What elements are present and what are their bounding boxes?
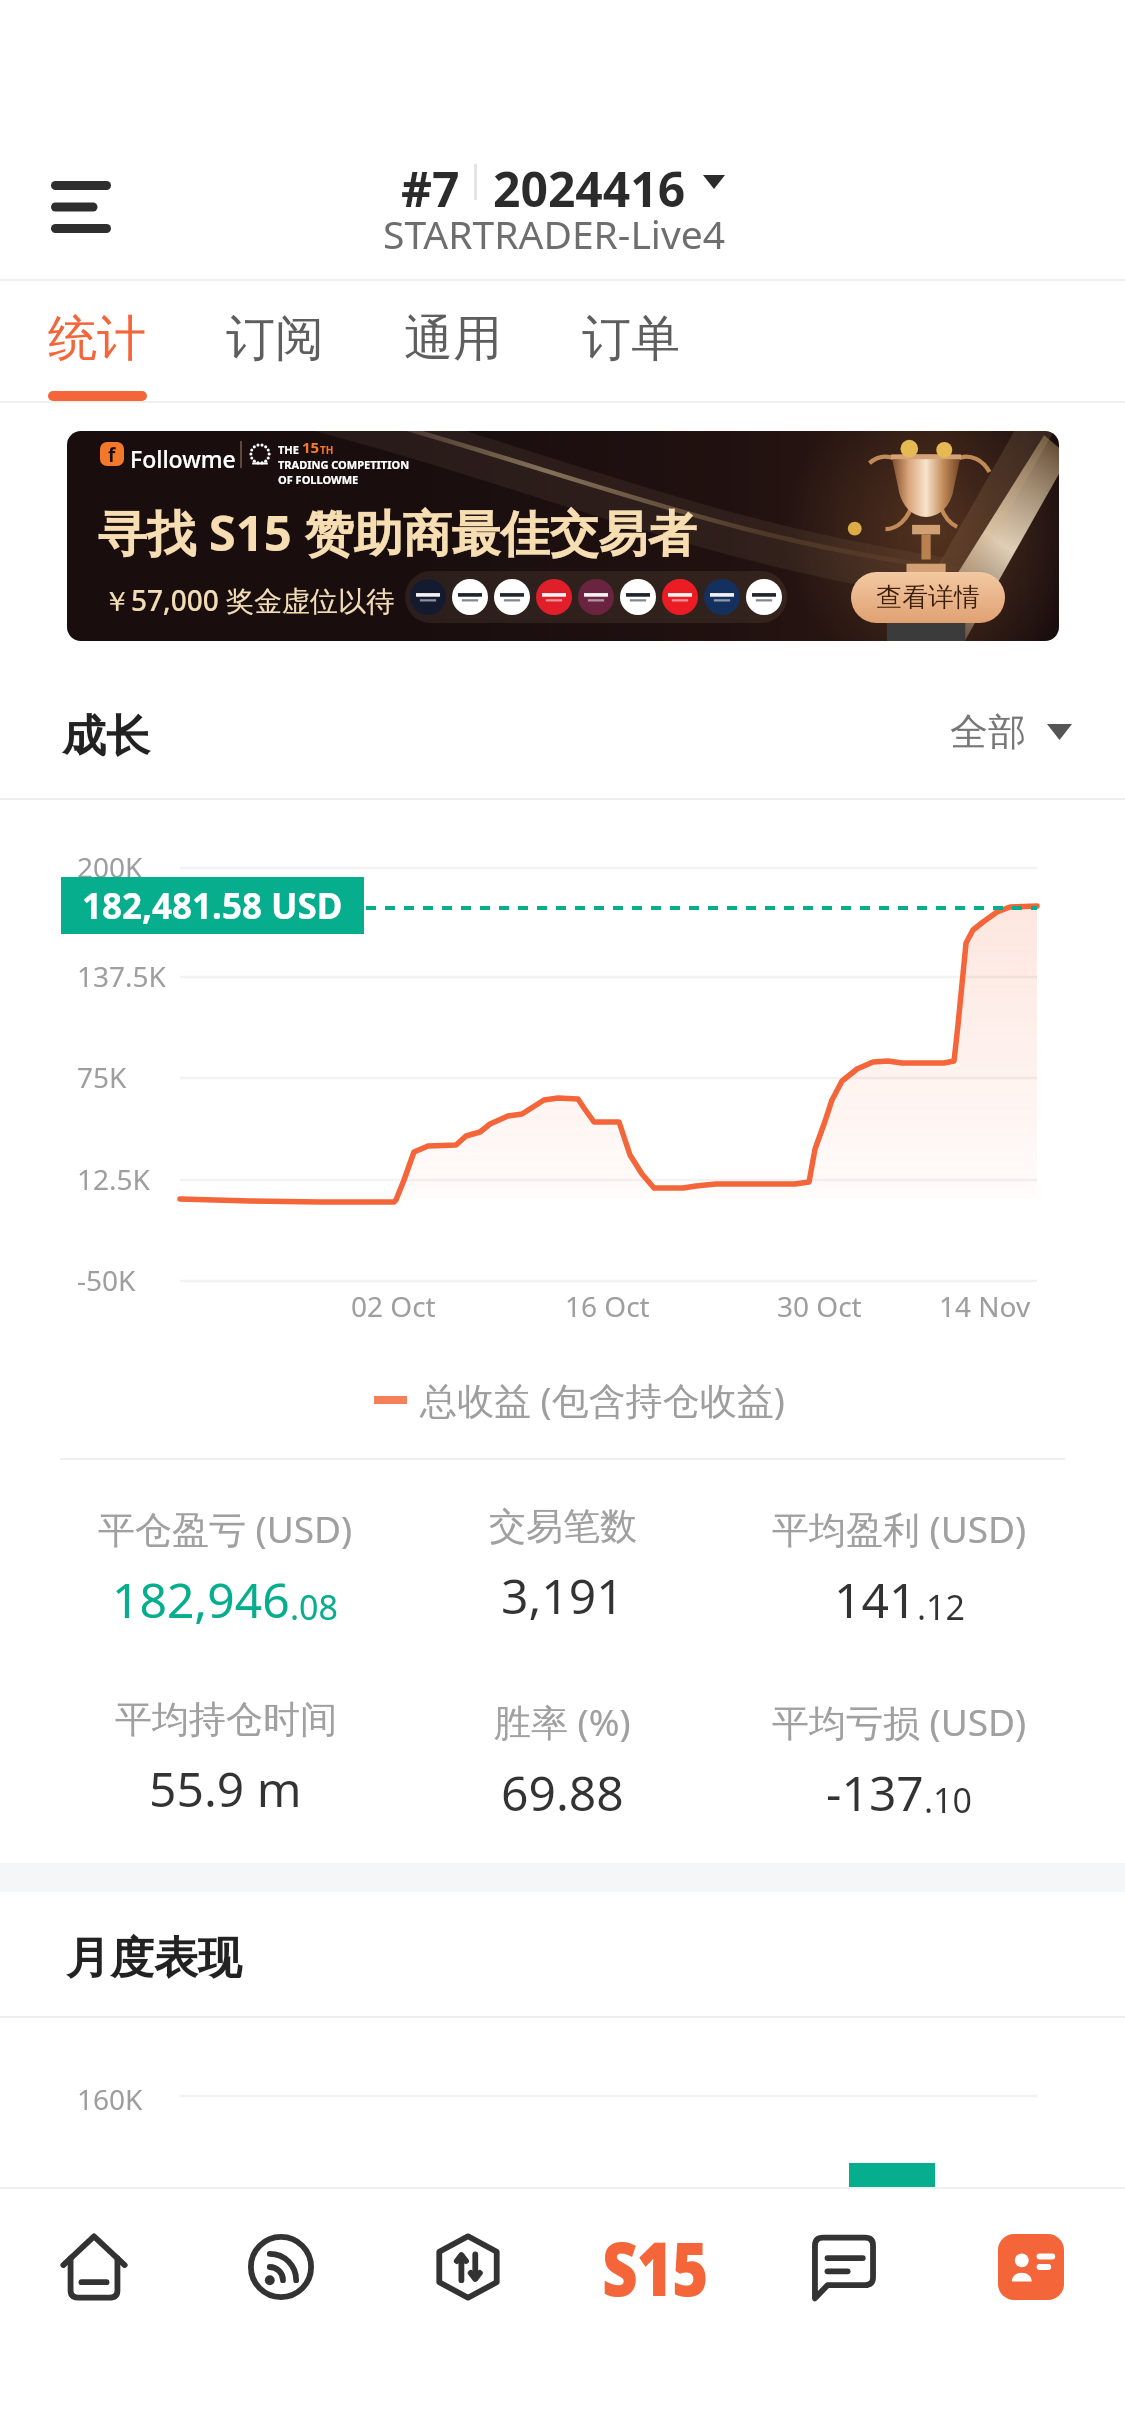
button[interactable]: Open navigation menu [19,149,142,265]
button[interactable]: Feed [187,2187,374,2347]
staticText: 订阅 [226,308,324,370]
staticText: -137 [826,1760,924,1825]
button[interactable]: S15 competition [561,2187,749,2347]
staticText: 182,481.58 USD [82,882,343,930]
staticText: 统计 [48,308,146,370]
staticText: 平均持仓时间 [115,1696,337,1743]
staticText: 55.9 m [149,1756,302,1821]
staticText: OF FOLLOWME [278,472,359,487]
staticText: 141 [834,1567,917,1632]
button[interactable]: Profile [937,2187,1125,2347]
staticText: 182,946 [112,1567,290,1632]
button[interactable]: 统计 [14,281,180,403]
staticText: ￥57,000 奖金虚位以待 [103,581,395,619]
staticText: 15 [302,437,320,457]
staticText: 总收益 (包含持仓收益) [420,1374,785,1425]
staticText: 137.5K [77,957,166,995]
staticText: .10 [924,1777,973,1823]
button[interactable]: 查看详情 [851,572,1005,623]
button[interactable]: 订单 [548,281,714,403]
staticText: -50K [77,1261,136,1299]
button[interactable]: Trades [374,2187,561,2347]
button[interactable]: 全部 [950,708,1072,756]
staticText: .12 [917,1584,966,1630]
staticText: 16 Oct [565,1287,650,1325]
staticText: 69.88 [501,1760,624,1825]
staticText: 12.5K [77,1160,150,1198]
button[interactable]: 平仓盈亏 (USD) [57,1503,394,1632]
button[interactable]: S15 trading competition banner [67,431,1059,641]
button[interactable]: 通用 [370,281,536,403]
staticText: Followme [130,443,236,474]
button[interactable]: 总收益 (包含持仓收益) [374,1374,785,1425]
staticText: 平均盈利 (USD) [772,1503,1027,1554]
staticText: THE [278,442,302,457]
staticText: 通用 [404,308,502,370]
staticText: 平均亏损 (USD) [772,1696,1027,1747]
staticText: 75K [77,1058,127,1096]
staticText: 200K [77,848,143,886]
staticText: TH [320,443,334,457]
staticText: S15 [602,2217,708,2317]
staticText: #7 [401,156,460,208]
button[interactable]: #7 [0,156,1125,208]
staticText: 3,191 [501,1563,624,1628]
button[interactable]: 交易笔数 [394,1503,731,1628]
staticText: TRADING COMPETITION [278,457,410,472]
button[interactable]: 平均持仓时间 [57,1696,394,1821]
button[interactable]: Messages [749,2187,937,2347]
staticText: 胜率 (%) [494,1696,631,1747]
staticText: 成长 [62,709,150,764]
staticText: STARTRADER-Live4 [383,207,725,260]
staticText: 14 Nov [939,1287,1031,1325]
button[interactable]: Home [0,2187,187,2347]
staticText: 查看详情 [876,581,980,614]
staticText: 订单 [582,308,680,370]
staticText: 160K [77,2080,143,2118]
staticText: 全部 [950,708,1026,756]
staticText: 02 Oct [351,1287,436,1325]
staticText: 平仓盈亏 (USD) [98,1503,353,1554]
staticText: 寻找 S15 赞助商最佳交易者 [98,499,697,566]
staticText: .08 [290,1584,339,1630]
staticText: 2024416 [493,156,686,208]
button[interactable]: 平均亏损 (USD) [731,1696,1068,1825]
staticText: 交易笔数 [489,1503,637,1550]
staticText: f [108,442,116,466]
staticText: 月度表现 [66,1931,242,1986]
button[interactable]: 胜率 (%) [394,1696,731,1825]
button[interactable]: 平均盈利 (USD) [731,1503,1068,1632]
staticText: 30 Oct [777,1287,862,1325]
button[interactable]: 订阅 [192,281,358,403]
